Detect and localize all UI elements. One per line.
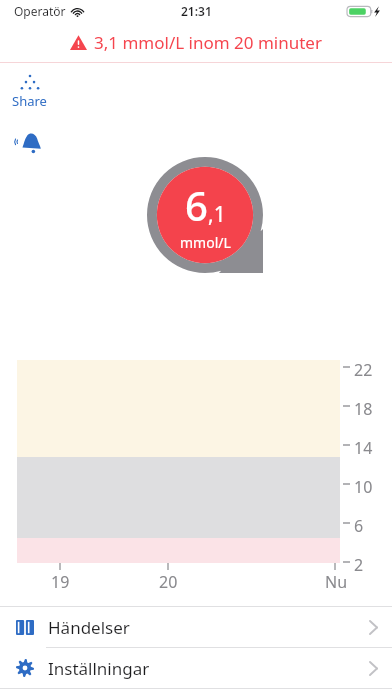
button[interactable]: 6 (147, 157, 263, 273)
staticText: 18 (354, 398, 373, 420)
button[interactable]: Inställningar (0, 648, 392, 688)
staticText: 21:31 (181, 3, 212, 19)
staticText: Inställningar (48, 657, 150, 680)
button[interactable]: Händelser (0, 607, 392, 647)
button[interactable]: Alarm (10, 126, 52, 160)
button[interactable]: 3,1 mmol/L inom 20 minuter (0, 22, 392, 63)
staticText: 14 (354, 437, 373, 459)
staticText: 10 (354, 476, 373, 498)
staticText: Händelser (48, 616, 130, 639)
staticText: 22 (354, 359, 373, 381)
staticText: 6 (354, 515, 364, 537)
staticText: mmol/L (180, 233, 231, 252)
staticText: 3,1 mmol/L inom 20 minuter (94, 31, 322, 54)
staticText: ,1 (208, 200, 226, 229)
staticText: 20 (159, 571, 178, 593)
staticText: 19 (51, 571, 70, 593)
staticText: 6 (185, 178, 208, 232)
button[interactable]: Share (12, 72, 47, 110)
staticText: Operatör (14, 3, 66, 19)
staticText: Nu (325, 571, 348, 593)
staticText: 2 (354, 554, 364, 576)
staticText: Share (12, 92, 47, 110)
